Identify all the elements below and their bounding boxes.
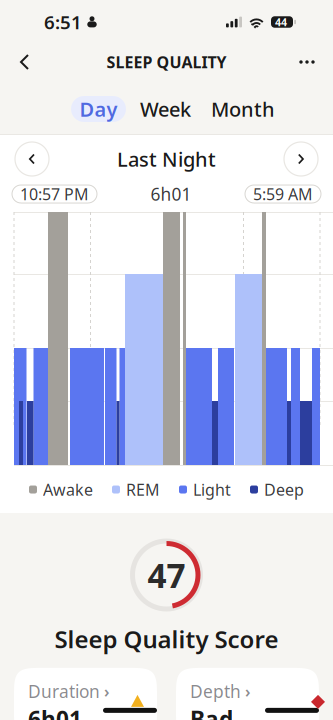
staticText: 44: [275, 15, 287, 29]
staticText: Awake: [43, 479, 93, 500]
staticText: ›: [245, 681, 251, 702]
staticText: 6h01: [150, 182, 191, 205]
staticText: 10:57 PM: [20, 183, 89, 205]
button[interactable]: More options: [287, 42, 327, 82]
staticText: Day: [79, 96, 117, 122]
staticText: Sleep Quality Score: [54, 623, 278, 655]
staticText: Depth: [190, 680, 241, 703]
staticText: 47: [147, 553, 185, 597]
staticText: Month: [211, 96, 275, 122]
staticText: Last Night: [117, 146, 216, 172]
staticText: Week: [140, 96, 191, 122]
staticText: Light: [193, 479, 231, 500]
button[interactable]: Duration: [14, 668, 157, 720]
button[interactable]: Month: [211, 96, 275, 121]
button[interactable]: Previous night: [15, 142, 49, 176]
button[interactable]: Day: [71, 96, 126, 122]
staticText: Duration: [28, 680, 100, 703]
button[interactable]: Next night: [284, 142, 318, 176]
staticText: 6:51: [44, 10, 82, 34]
button[interactable]: Depth: [176, 668, 319, 720]
button[interactable]: Back: [5, 42, 45, 82]
staticText: ›: [104, 681, 110, 702]
staticText: Bad: [190, 704, 233, 720]
staticText: REM: [126, 479, 160, 500]
staticText: Deep: [264, 479, 304, 500]
button[interactable]: Week: [140, 96, 191, 121]
staticText: 6h01: [28, 704, 82, 720]
staticText: 5:59 AM: [253, 183, 313, 205]
staticText: SLEEP QUALITY: [106, 51, 226, 73]
